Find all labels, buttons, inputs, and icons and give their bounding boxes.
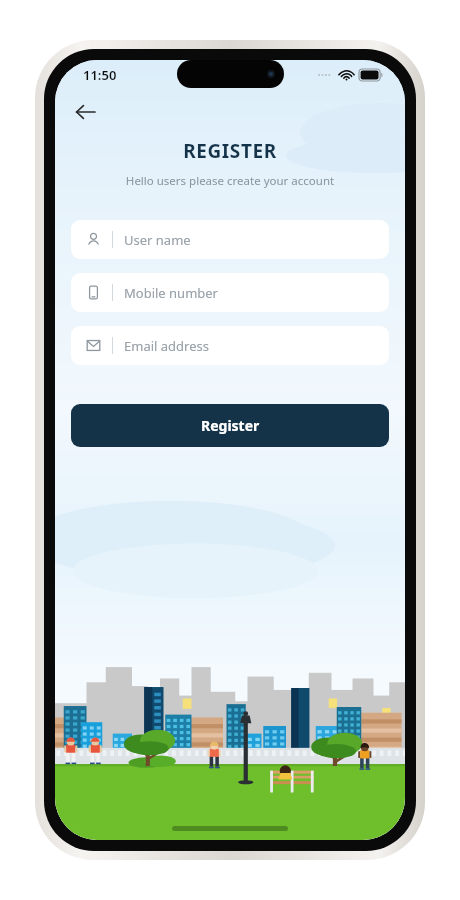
staticText: Email address xyxy=(124,337,209,355)
staticText: Register xyxy=(201,416,260,435)
staticText: Hello users please create your account xyxy=(55,173,405,189)
button[interactable]: Email address xyxy=(71,326,389,365)
button[interactable]: Register xyxy=(71,404,389,447)
staticText: 11:50 xyxy=(83,66,117,84)
staticText: REGISTER xyxy=(55,138,405,164)
button[interactable]: Mobile number xyxy=(71,273,389,312)
button[interactable]: User name xyxy=(71,220,389,259)
staticText: User name xyxy=(124,231,191,249)
button[interactable]: Back xyxy=(65,92,105,132)
staticText: Mobile number xyxy=(124,284,218,302)
